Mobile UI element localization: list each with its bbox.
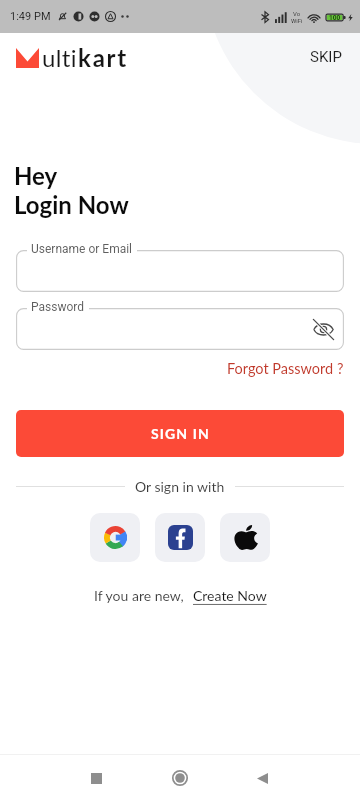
staticText: Password [31, 300, 85, 314]
button[interactable]: Sign in with Facebook [155, 513, 205, 562]
staticText: Login Now [14, 190, 129, 219]
button[interactable]: Recents [76, 758, 116, 798]
staticText: Or sign in with [135, 478, 225, 495]
button[interactable]: Show password [312, 318, 335, 341]
staticText: If you are new, [94, 587, 184, 604]
button[interactable]: Create Now [193, 587, 267, 604]
button[interactable]: Back [242, 758, 282, 798]
staticText: ulti [42, 43, 78, 72]
button[interactable]: SIGN IN [16, 410, 344, 457]
staticText: WiFi [291, 17, 303, 24]
staticText: Hey [14, 161, 58, 190]
staticText: Create Now [193, 587, 267, 604]
staticText: SIGN IN [151, 425, 210, 442]
staticText: 100 [329, 14, 341, 22]
button[interactable]: Sign in with Google [90, 513, 140, 562]
staticText: SKIP [310, 48, 342, 66]
button[interactable]: Sign in with Apple [220, 513, 270, 562]
staticText: 1:49 PM [10, 10, 51, 23]
staticText: Vo [293, 10, 301, 17]
staticText: kart [78, 43, 129, 72]
staticText: Forgot Password ? [227, 360, 344, 377]
staticText: Username or Email [31, 242, 133, 256]
button[interactable]: Forgot Password ? [227, 360, 344, 377]
button[interactable]: Home [160, 758, 200, 798]
button[interactable]: SKIP [304, 42, 348, 72]
